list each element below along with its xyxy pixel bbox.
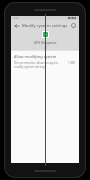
button[interactable]: Help: [68, 20, 79, 31]
staticText: GPS Ringtone: [33, 40, 57, 45]
button[interactable]: Navigate up: [11, 20, 22, 31]
button[interactable]: Allow modifying system settings: [11, 51, 79, 72]
button[interactable]: Allow modifying system settings toggle: [66, 58, 76, 66]
staticText: Modify system settings: [22, 23, 68, 29]
staticText: v1: [44, 46, 47, 50]
staticText: This permission allows an app to modify …: [14, 61, 64, 69]
staticText: Allow modifying system settings: [14, 54, 64, 59]
